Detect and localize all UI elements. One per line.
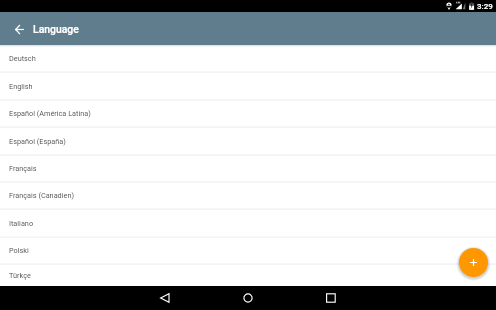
staticText: 3:29: [477, 2, 493, 11]
button[interactable]: Français (Canadien): [0, 183, 496, 210]
staticText: Italiano: [9, 219, 34, 228]
button[interactable]: Add: [459, 248, 488, 277]
button[interactable]: Navigate up: [7, 17, 31, 41]
staticText: Deutsch: [9, 54, 36, 63]
button[interactable]: Français: [0, 156, 496, 183]
button[interactable]: Polski: [0, 238, 496, 265]
staticText: Türkçe: [9, 271, 31, 280]
staticText: Español (América Latina): [9, 109, 91, 118]
staticText: Language: [33, 23, 79, 35]
button[interactable]: Back: [139, 286, 191, 310]
button[interactable]: Recent apps: [305, 286, 357, 310]
button[interactable]: Deutsch: [0, 46, 496, 73]
button[interactable]: Español (España): [0, 129, 496, 156]
staticText: Español (España): [9, 137, 66, 146]
button[interactable]: Italiano: [0, 211, 496, 238]
staticText: Français: [9, 164, 37, 173]
button[interactable]: Español (América Latina): [0, 101, 496, 128]
button[interactable]: Türkçe: [0, 266, 496, 286]
staticText: Polski: [9, 246, 29, 255]
button[interactable]: English: [0, 74, 496, 101]
button[interactable]: Home: [222, 286, 274, 310]
staticText: Français (Canadien): [9, 191, 74, 200]
staticText: English: [9, 82, 33, 91]
